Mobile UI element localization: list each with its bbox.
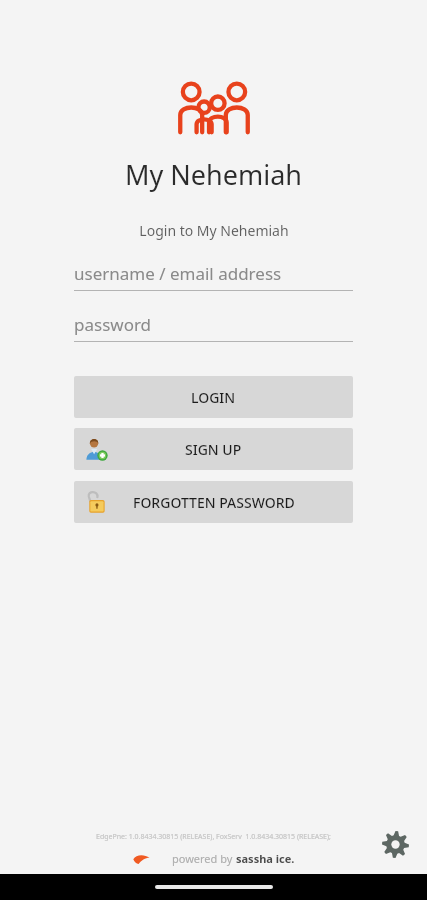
button[interactable]: FORGOTTEN PASSWORD (74, 481, 353, 523)
staticText: EdgePne: 1.0.8434.30815 (RELEASE), FoxSe… (96, 832, 331, 842)
staticText: FORGOTTEN PASSWORD (133, 493, 295, 512)
staticText: SIGN UP (185, 440, 242, 459)
staticText: Login to My Nehemiah (139, 221, 289, 240)
staticText: password (74, 313, 152, 336)
staticText: username / email address (74, 262, 282, 285)
staticText: powered by (172, 851, 236, 866)
button[interactable]: LOGIN (74, 376, 353, 418)
staticText: sassha ice. (236, 851, 295, 866)
staticText: LOGIN (191, 388, 236, 407)
button[interactable]: Settings (375, 824, 415, 864)
button[interactable]: SIGN UP (74, 428, 353, 470)
staticText: My Nehemiah (125, 156, 302, 193)
